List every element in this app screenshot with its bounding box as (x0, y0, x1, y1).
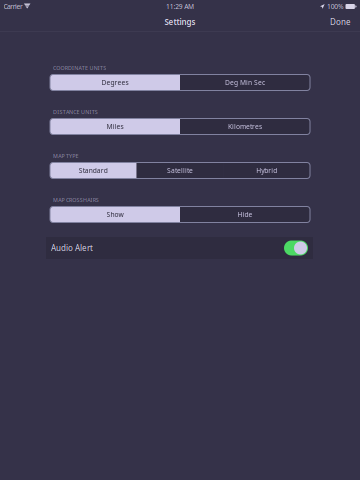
staticText: Settings (164, 17, 195, 27)
button[interactable]: Deg Min Sec (180, 74, 310, 90)
staticText: Audio Alert (51, 243, 93, 253)
staticText: Kilometres (228, 122, 262, 131)
staticText: Show (106, 210, 123, 219)
staticText: Deg Min Sec (225, 78, 265, 87)
staticText: Carrier (3, 2, 23, 11)
staticText: DISTANCE UNITS (53, 108, 98, 116)
staticText: Standard (79, 166, 108, 175)
button[interactable]: Done (326, 13, 355, 31)
button[interactable]: Degrees (50, 74, 180, 90)
staticText: COORDINATE UNITS (53, 64, 106, 72)
staticText: Satellite (167, 166, 193, 175)
button[interactable]: Audio Alert (46, 237, 313, 259)
staticText: MAP CROSSHAIRS (53, 196, 99, 204)
staticText: 11:29 AM (166, 2, 194, 11)
staticText: MAP TYPE (53, 152, 78, 160)
staticText: Hybrid (256, 166, 277, 175)
staticText: Done (330, 17, 351, 27)
button[interactable]: Show (50, 206, 180, 222)
button[interactable]: Hide (180, 206, 310, 222)
button[interactable]: Kilometres (180, 118, 310, 134)
button[interactable]: Hybrid (223, 162, 310, 178)
staticText: Hide (237, 210, 252, 219)
staticText: Degrees (101, 78, 128, 87)
button[interactable]: Miles (50, 118, 180, 134)
button[interactable]: Standard (50, 162, 137, 178)
staticText: 100% (327, 2, 344, 11)
staticText: Miles (106, 122, 123, 131)
button[interactable]: Satellite (137, 162, 223, 178)
